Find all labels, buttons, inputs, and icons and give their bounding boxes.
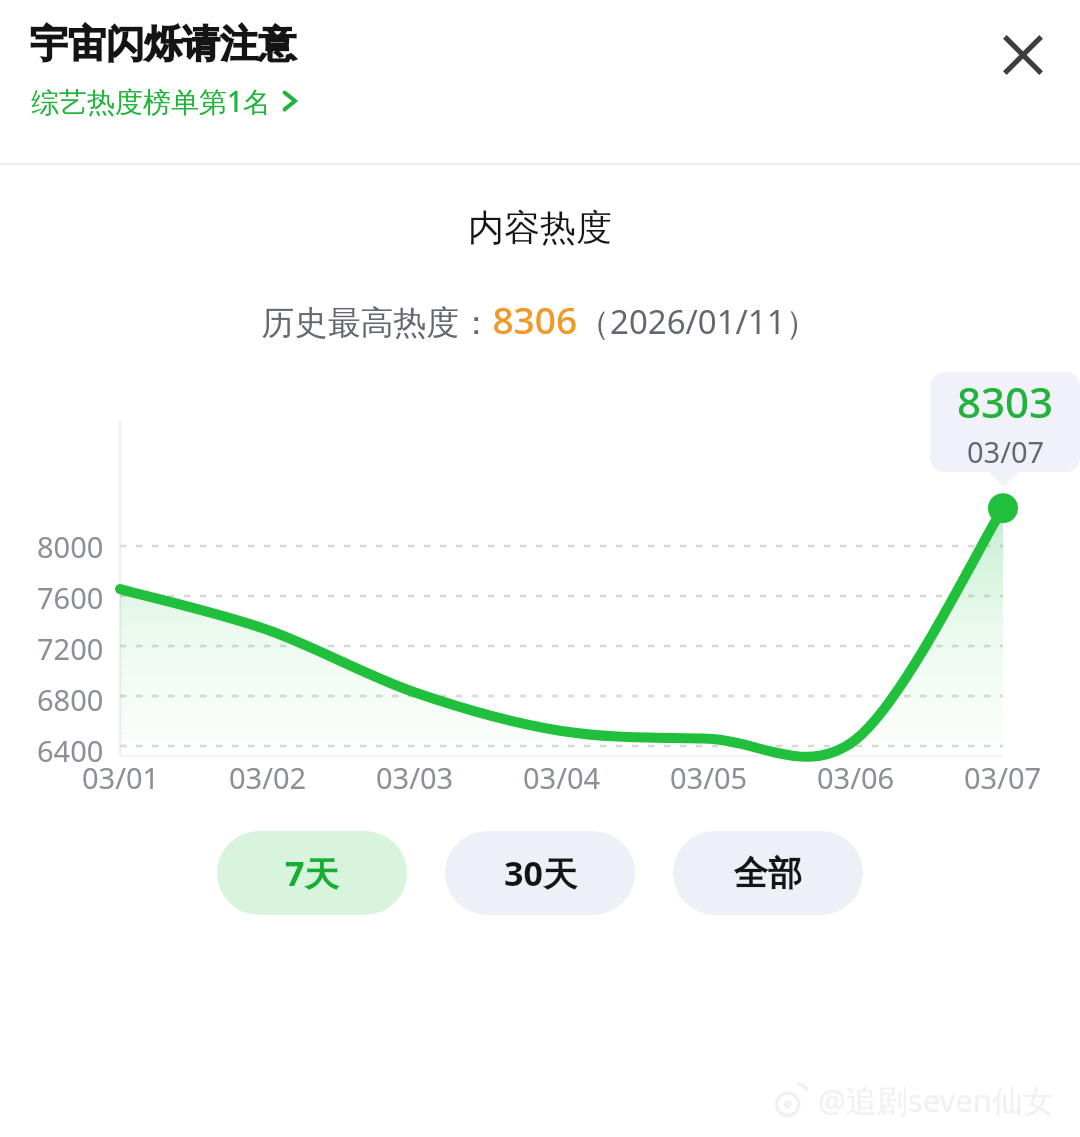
button[interactable]: 30天: [445, 831, 635, 915]
staticText: 内容热度: [468, 205, 612, 250]
button[interactable]: Close: [987, 19, 1059, 91]
staticText: 8303: [957, 373, 1054, 430]
staticText: 6400: [37, 731, 104, 769]
staticText: 8000: [37, 527, 104, 565]
staticText: 7天: [285, 850, 339, 896]
staticText: 历史最高热度：8306（2026/01/11）: [261, 294, 819, 344]
staticText: 综艺热度榜单第1名: [31, 82, 272, 120]
staticText: @追剧seven仙女: [818, 1079, 1054, 1121]
staticText: 03/04: [523, 758, 601, 796]
staticText: 03/06: [817, 758, 895, 796]
staticText: 6800: [37, 680, 104, 718]
staticText: 30天: [504, 850, 577, 896]
staticText: 宇宙闪烁请注意: [30, 20, 296, 68]
staticText: 7600: [37, 578, 104, 616]
staticText: 03/03: [376, 758, 454, 796]
button[interactable]: 综艺热度榜单第1名: [30, 80, 300, 122]
staticText: 03/07: [967, 432, 1045, 471]
staticText: 03/07: [964, 758, 1042, 796]
staticText: 03/05: [670, 758, 748, 796]
button[interactable]: 全部: [673, 831, 863, 915]
button[interactable]: 7天: [217, 831, 407, 915]
staticText: 全部: [734, 852, 802, 895]
staticText: 7200: [37, 629, 104, 667]
staticText: 03/01: [82, 758, 160, 796]
staticText: 03/02: [229, 758, 307, 796]
